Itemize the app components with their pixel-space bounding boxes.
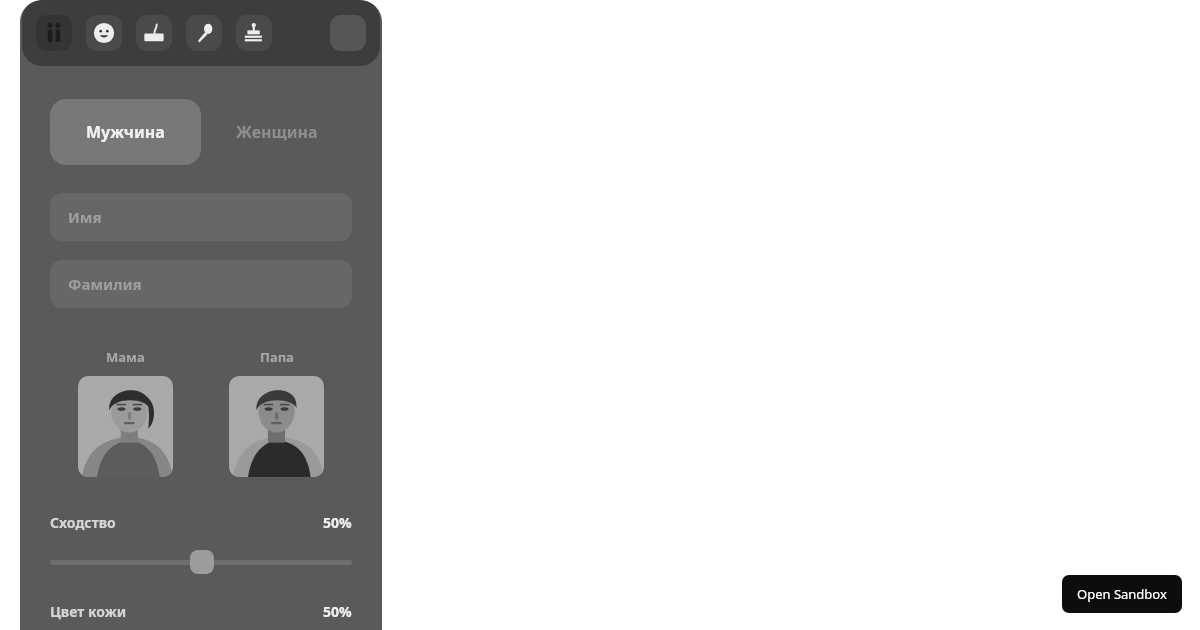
button[interactable]: Makeup	[186, 15, 222, 51]
button[interactable]: Style	[236, 15, 272, 51]
staticText: Цвет кожи	[50, 602, 127, 621]
staticText: Фамилия	[68, 274, 142, 294]
button[interactable]: Мама photo	[78, 376, 173, 477]
button[interactable]: Папа photo	[229, 376, 324, 477]
staticText: Мужчина	[86, 121, 165, 143]
staticText: Женщина	[236, 121, 318, 143]
staticText: Папа	[260, 348, 294, 366]
button[interactable]: Open Sandbox	[1062, 575, 1182, 613]
button[interactable]	[50, 549, 352, 575]
staticText: 50%	[323, 513, 352, 532]
staticText: Мама	[106, 348, 145, 366]
button[interactable]: More options	[330, 15, 366, 51]
button[interactable]: Hair	[136, 15, 172, 51]
staticText: 50%	[323, 602, 352, 621]
staticText: Open Sandbox	[1077, 585, 1167, 603]
staticText: Имя	[68, 207, 102, 227]
button[interactable]: Имя	[50, 193, 352, 241]
button[interactable]: Женщина	[201, 99, 352, 165]
button[interactable]: Фамилия	[50, 260, 352, 308]
button[interactable]: Face	[86, 15, 122, 51]
button[interactable]: Мужчина	[50, 99, 201, 165]
staticText: Сходство	[50, 513, 116, 532]
button[interactable]: Body type	[36, 15, 72, 51]
